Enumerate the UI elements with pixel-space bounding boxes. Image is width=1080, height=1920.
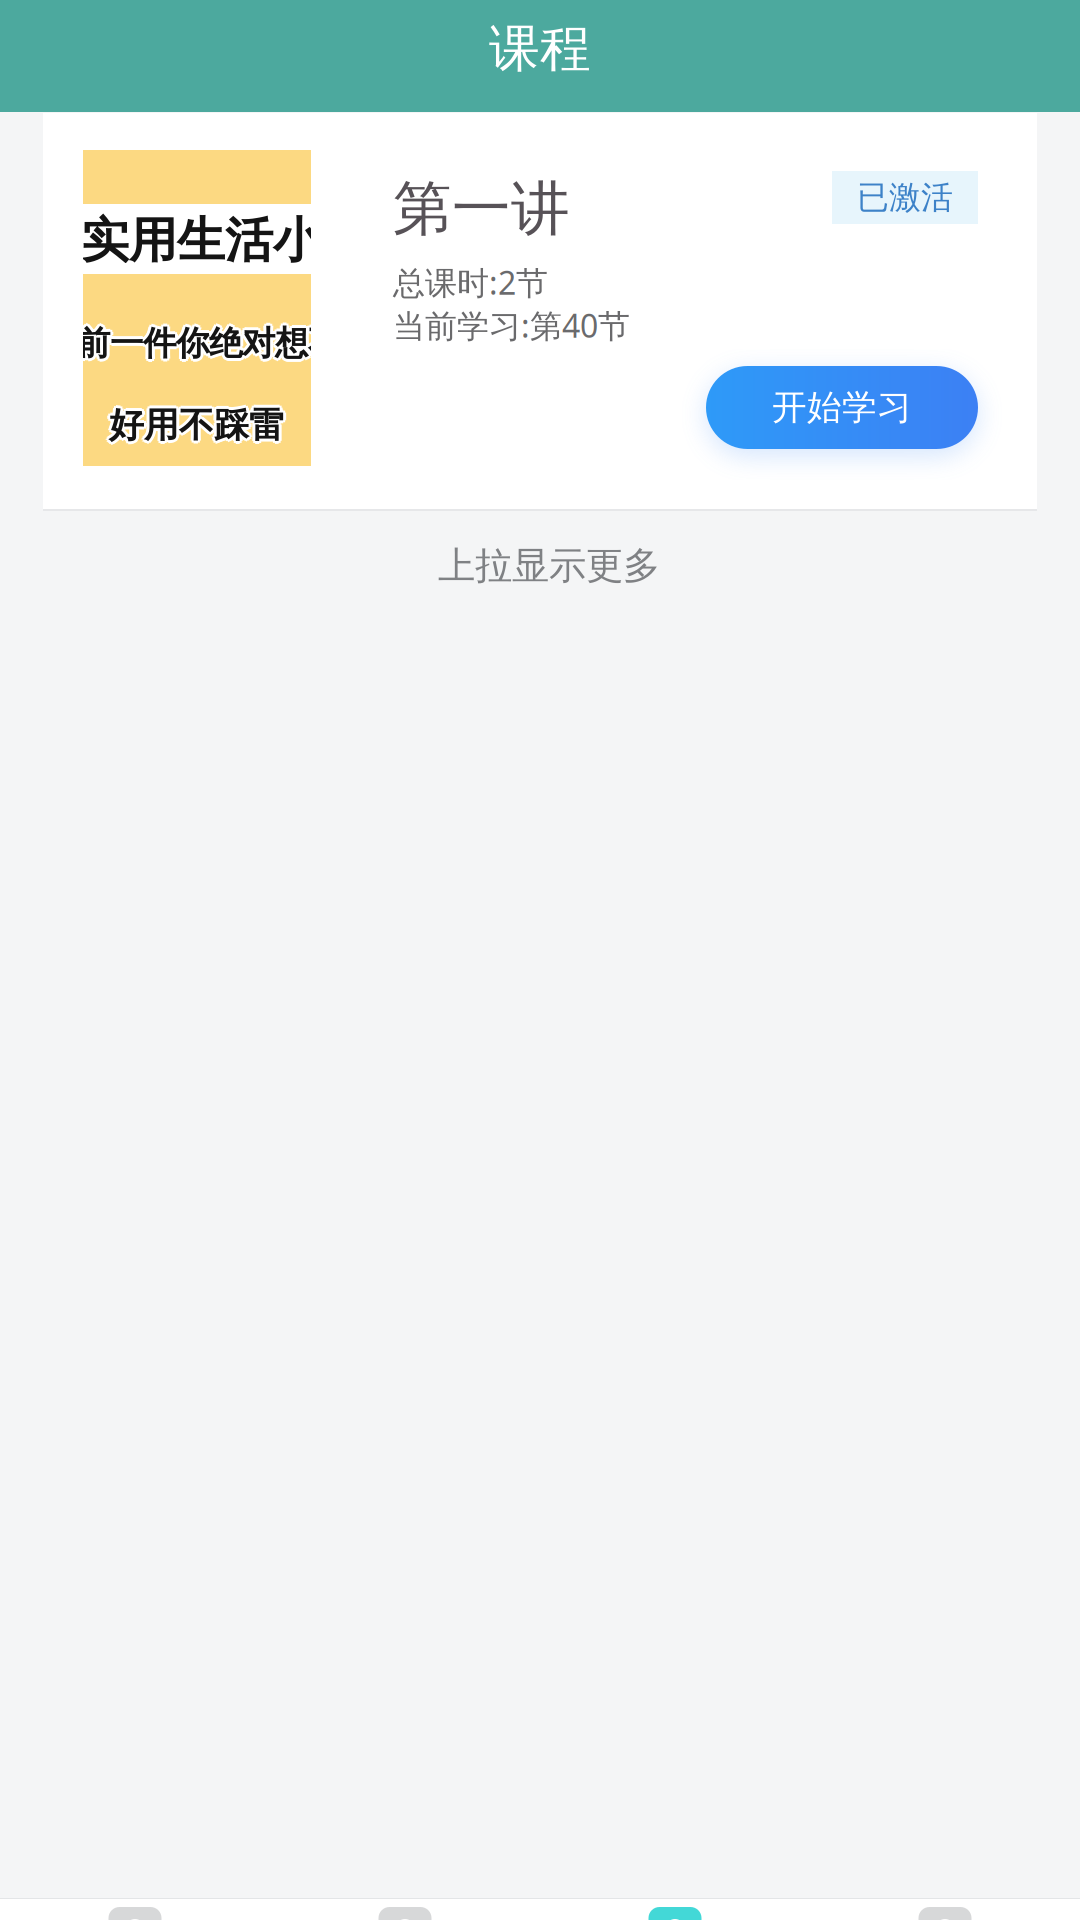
staticText: 前一件你绝对想不	[79, 321, 343, 362]
button[interactable]: 发现	[270, 1907, 540, 1920]
staticText: 前一件你绝对想不	[77, 326, 341, 367]
staticText: 前一件你绝对想不	[80, 323, 344, 364]
staticText: 好用不踩雷	[112, 404, 287, 447]
button[interactable]: 实用生活小	[43, 113, 1037, 509]
staticText: 好用不踩雷	[107, 402, 282, 445]
staticText: 开始学习	[772, 386, 912, 429]
staticText: 好用不踩雷	[107, 406, 282, 449]
staticText: 好用不踩雷	[111, 402, 286, 445]
staticText: 好用不踩雷	[109, 404, 284, 447]
staticText: 上拉显示更多	[438, 543, 660, 589]
staticText: 好用不踩雷	[106, 404, 281, 447]
staticText: 好用不踩雷	[111, 406, 286, 449]
button[interactable]: 首页	[0, 1907, 270, 1920]
staticText: 好用不踩雷	[109, 407, 284, 450]
staticText: 总课时:2节	[393, 261, 548, 303]
staticText: 前一件你绝对想不	[77, 323, 341, 364]
staticText: 已激活	[857, 178, 953, 217]
staticText: 课程	[489, 18, 591, 80]
staticText: 前一件你绝对想不	[74, 323, 338, 364]
staticText: 当前学习:第40节	[393, 304, 630, 346]
button[interactable]: 课程	[540, 1907, 810, 1920]
staticText: 实用生活小	[81, 211, 321, 270]
staticText: 第一讲	[393, 173, 570, 245]
staticText: 前一件你绝对想不	[79, 325, 343, 366]
staticText: 前一件你绝对想不	[75, 321, 339, 362]
staticText: 好用不踩雷	[109, 401, 284, 444]
button[interactable]: 我的	[810, 1907, 1080, 1920]
staticText: 前一件你绝对想不	[75, 325, 339, 366]
staticText: 前一件你绝对想不	[77, 320, 341, 361]
